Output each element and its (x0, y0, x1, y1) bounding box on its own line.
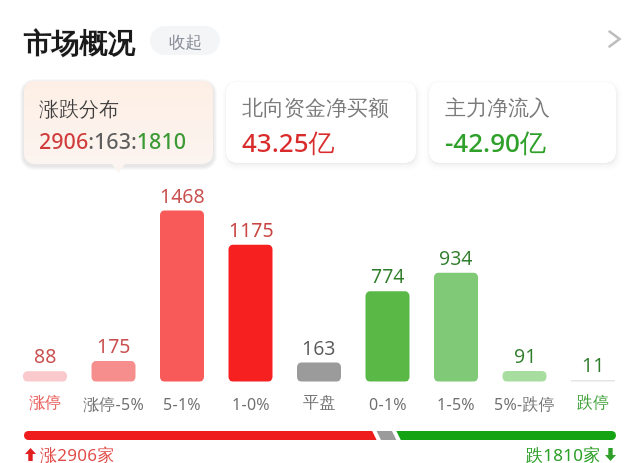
staticText: 涨停 (29, 393, 62, 413)
button[interactable]: More (598, 23, 630, 55)
staticText: 934 (439, 244, 473, 271)
staticText: 5-1% (163, 393, 201, 415)
button[interactable]: 北向资金净买额 (226, 82, 416, 163)
staticText: 1-0% (232, 393, 270, 415)
staticText: 涨停-5% (83, 393, 145, 415)
staticText: 涨跌分布 (39, 97, 119, 122)
staticText: 11 (582, 351, 605, 378)
staticText: 跌停 (577, 393, 610, 413)
staticText: 5%-跌停 (494, 393, 556, 415)
button[interactable]: 收起 (150, 26, 220, 55)
staticText: 平盘 (303, 393, 336, 413)
staticText: 市场概况 (23, 26, 135, 61)
button[interactable]: 主力净流入 (429, 82, 616, 163)
staticText: 0-1% (369, 393, 407, 415)
staticText: 收起 (169, 32, 202, 53)
staticText: 163 (302, 334, 336, 361)
button[interactable]: 跌1810家 (526, 443, 616, 463)
staticText: 2906:163:1810 (39, 126, 186, 155)
staticText: 1-5% (437, 393, 475, 415)
staticText: 43.25亿 (242, 124, 335, 160)
staticText: 涨2906家 (40, 443, 115, 463)
button[interactable]: 涨2906家 (25, 443, 115, 463)
staticText: 88 (34, 342, 57, 369)
staticText: 跌1810家 (526, 443, 601, 463)
staticText: -42.90亿 (445, 124, 546, 160)
staticText: 91 (514, 342, 537, 369)
staticText: 北向资金净买额 (242, 95, 389, 121)
staticText: 主力净流入 (445, 95, 550, 121)
staticText: 1468 (160, 182, 205, 209)
staticText: 1175 (229, 216, 274, 243)
staticText: 774 (371, 262, 405, 289)
staticText: 175 (97, 332, 131, 359)
